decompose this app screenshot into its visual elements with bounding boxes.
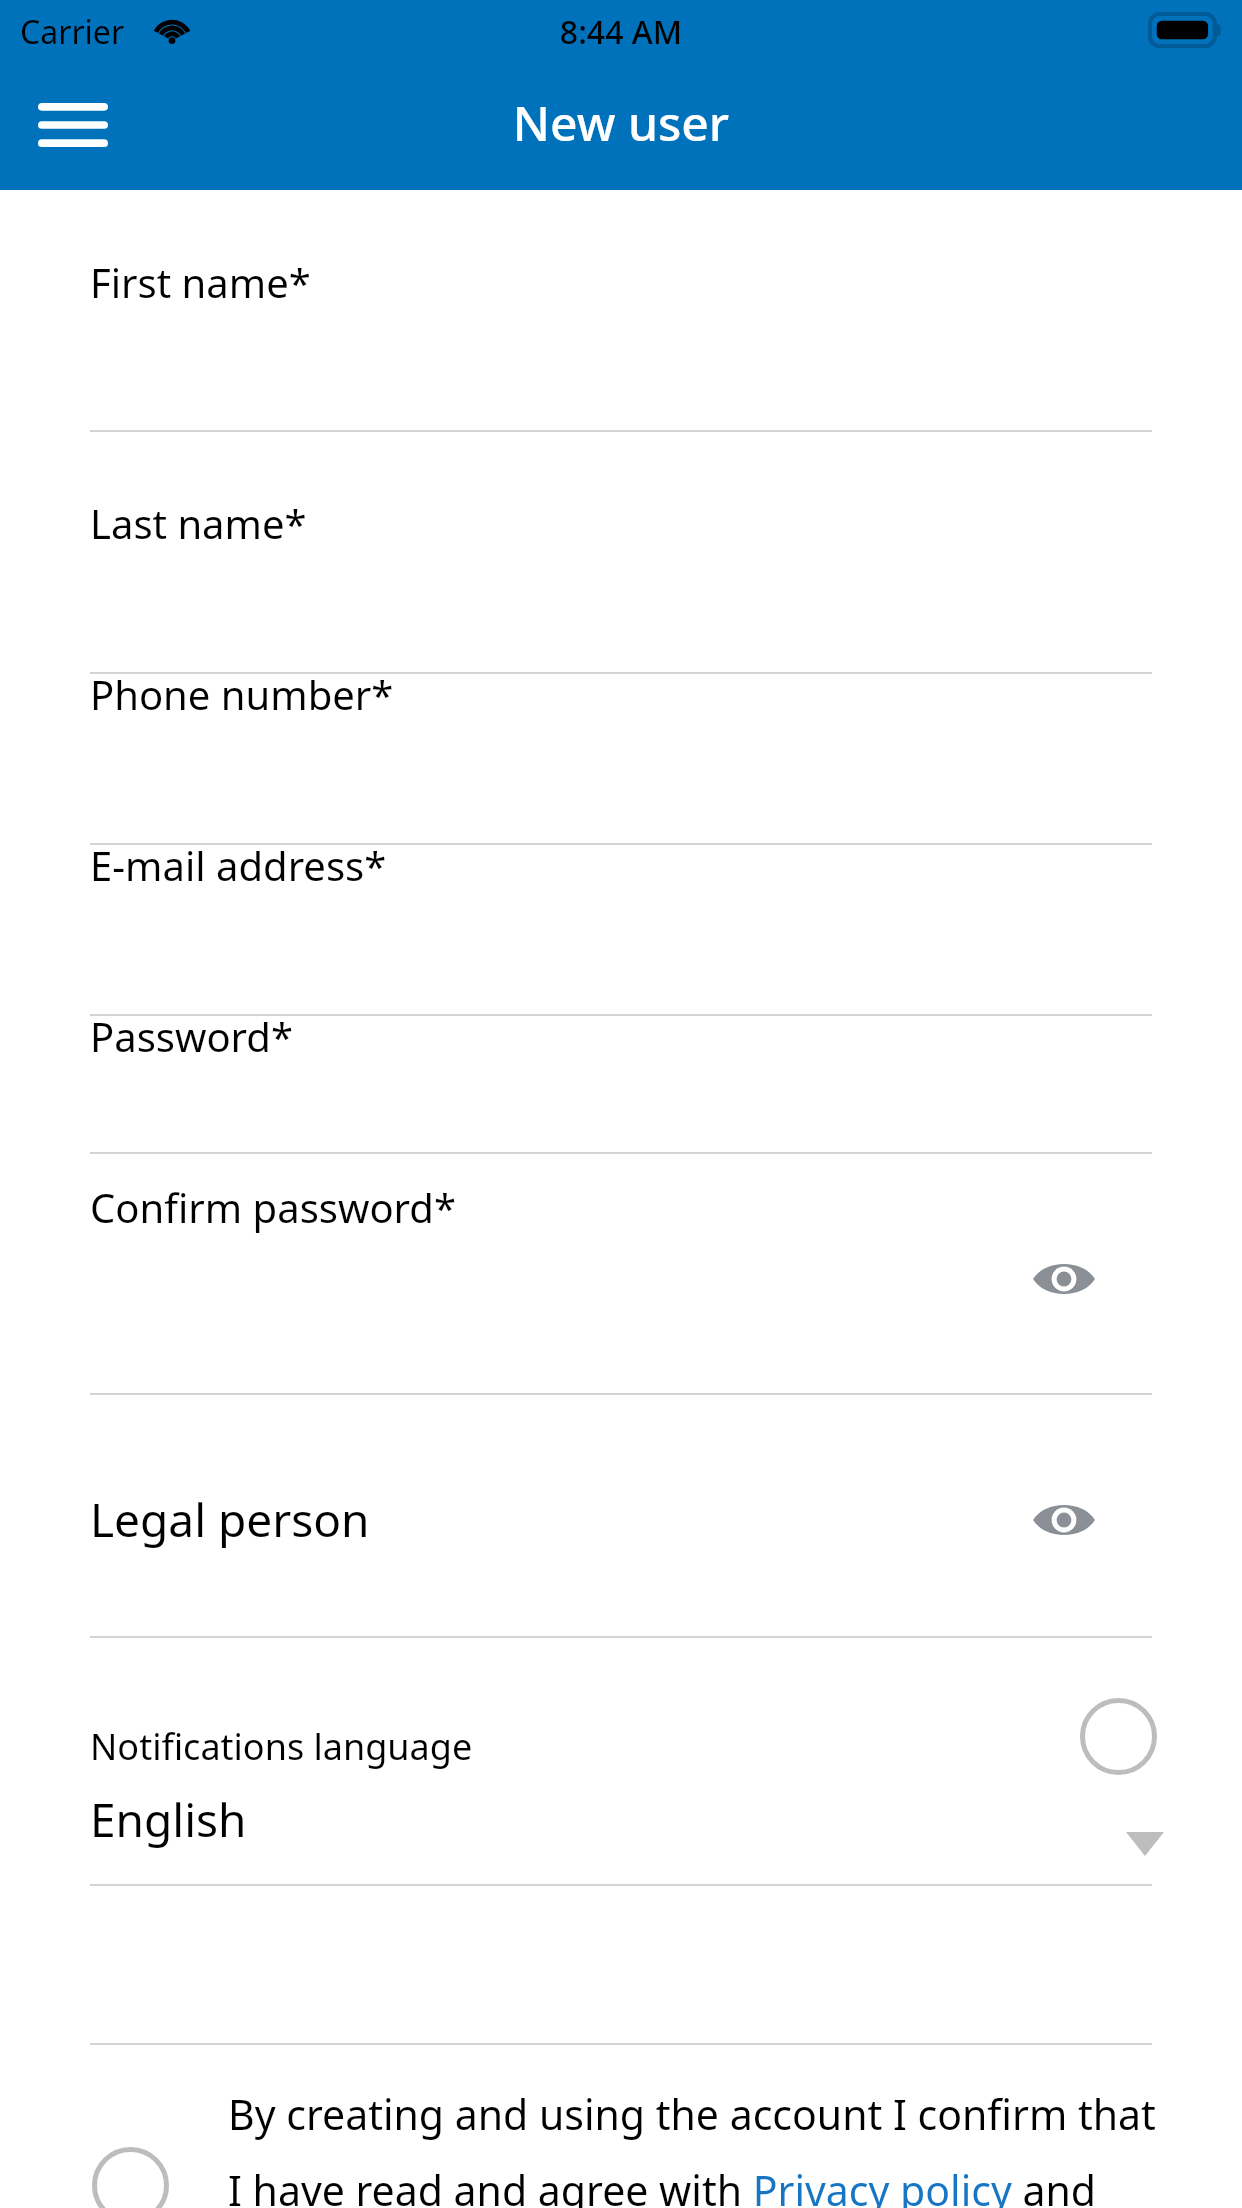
button[interactable]: Show confirm password	[1018, 1484, 1110, 1556]
staticText: Notifications language	[90, 1722, 473, 1771]
button[interactable]: Phone number*	[0, 607, 1242, 807]
staticText: New user	[0, 90, 1242, 155]
button[interactable]: Notifications language	[0, 1636, 1242, 1884]
button[interactable]: Legal person toggle	[1080, 1698, 1157, 1775]
staticText: Confirm password*	[90, 1180, 456, 1234]
staticText: Last name*	[90, 496, 307, 550]
staticText: By creating and using the account I conf…	[228, 2086, 1156, 2208]
button[interactable]: E-mail address*	[0, 778, 1242, 978]
button[interactable]: Last name*	[0, 436, 1242, 636]
button[interactable]: Password*	[0, 949, 1242, 1149]
button[interactable]: Accept terms	[92, 2147, 169, 2208]
staticText: E-mail address*	[90, 838, 387, 892]
staticText: First name*	[90, 255, 311, 309]
button[interactable]: Show password	[1018, 1243, 1110, 1315]
staticText: Legal person	[90, 1488, 370, 1551]
staticText: Password*	[90, 1009, 293, 1063]
staticText: Carrier	[20, 10, 125, 54]
staticText: English	[90, 1788, 247, 1851]
staticText: 8:44 AM	[0, 10, 1242, 54]
button[interactable]: By creating and using the account I conf…	[228, 2086, 1208, 2208]
staticText: Phone number*	[90, 667, 394, 721]
button[interactable]: Confirm password*	[0, 1120, 1242, 1320]
button[interactable]: Menu	[8, 78, 138, 172]
button[interactable]: Legal person	[0, 1400, 1242, 1636]
button[interactable]: First name*	[0, 195, 1242, 395]
